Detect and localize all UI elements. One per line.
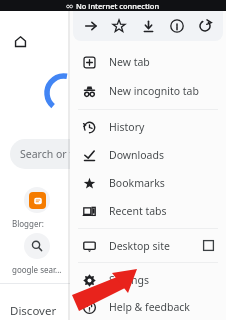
button[interactable]: Settings xyxy=(70,266,226,294)
button[interactable]: Downloads xyxy=(70,141,226,169)
button[interactable]: Search or typ xyxy=(10,139,96,169)
staticText: Downloads xyxy=(109,148,214,162)
button[interactable]: Page info xyxy=(164,13,190,39)
button[interactable]: Bookmark this page xyxy=(106,13,132,39)
staticText: Blogger: Po... xyxy=(12,218,62,229)
button[interactable]: Help & feedback xyxy=(70,294,226,320)
staticText: No internet connection xyxy=(76,1,160,11)
staticText: Recent tabs xyxy=(109,204,214,218)
button[interactable]: Recent tabs xyxy=(70,197,226,225)
button[interactable]: New incognito tab xyxy=(70,76,226,105)
button[interactable]: Home xyxy=(8,29,32,53)
button[interactable]: Download page xyxy=(135,13,161,39)
staticText: Bookmarks xyxy=(109,176,214,190)
button[interactable]: google sear... xyxy=(12,233,62,275)
staticText: New incognito tab xyxy=(109,84,214,98)
staticText: History xyxy=(109,120,214,134)
button[interactable]: Bookmarks xyxy=(70,169,226,197)
button[interactable]: Blogger: Po... xyxy=(12,187,62,229)
button[interactable]: History xyxy=(70,113,226,141)
staticText: google sear... xyxy=(12,264,62,275)
button[interactable]: Reload xyxy=(192,13,218,39)
button[interactable]: New tab xyxy=(70,47,226,76)
staticText: Settings xyxy=(109,273,214,287)
staticText: Desktop site xyxy=(109,239,203,253)
button[interactable]: Forward xyxy=(78,13,104,39)
staticText: Search or typ xyxy=(20,147,85,161)
staticText: Discover xyxy=(10,303,57,319)
staticText: New tab xyxy=(109,55,214,69)
staticText: Help & feedback xyxy=(109,300,214,314)
button[interactable]: Desktop site xyxy=(70,231,226,260)
